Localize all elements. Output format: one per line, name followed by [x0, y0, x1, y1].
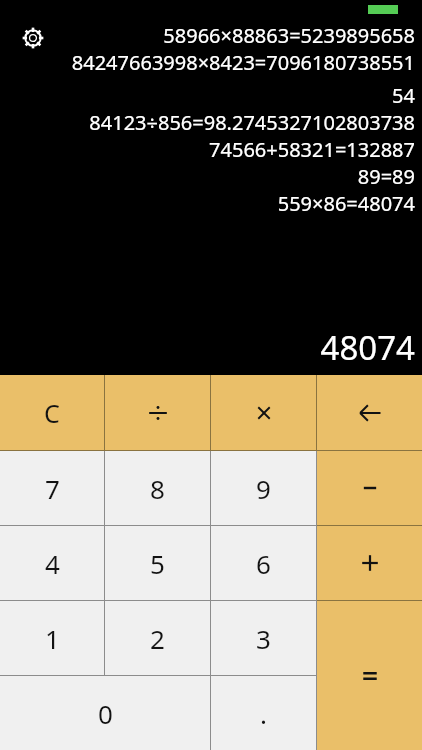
staticText: 58966×88863=5239895658	[40, 22, 415, 49]
button[interactable]: Divide	[105, 375, 210, 450]
button[interactable]: C	[0, 375, 104, 450]
staticText: .	[260, 696, 267, 731]
button[interactable]: Settings	[18, 23, 48, 53]
staticText: 0	[98, 696, 113, 731]
button[interactable]: Multiply	[211, 375, 316, 450]
button[interactable]: 8	[105, 451, 210, 525]
button[interactable]: Plus	[317, 526, 422, 600]
staticText: 4	[45, 546, 60, 581]
staticText: 6	[256, 546, 271, 581]
button[interactable]: 4	[0, 526, 104, 600]
staticText: 2	[150, 621, 165, 656]
staticText: 559×86=48074	[40, 190, 415, 217]
button[interactable]: 1	[0, 601, 104, 675]
staticText: 84123÷856=98.2745327102803738	[40, 109, 415, 136]
staticText: 8	[150, 471, 165, 506]
button[interactable]: Minus	[317, 451, 422, 525]
staticText: 84247663998×8423=7096180738551 54	[40, 49, 415, 109]
button[interactable]: 7	[0, 451, 104, 525]
button[interactable]: 6	[211, 526, 316, 600]
button[interactable]: Backspace	[317, 375, 422, 450]
staticText: 48074	[320, 325, 415, 370]
staticText: 89=89	[40, 163, 415, 190]
staticText: 7	[45, 471, 60, 506]
button[interactable]: 3	[211, 601, 316, 675]
button[interactable]: 9	[211, 451, 316, 525]
staticText: 1	[45, 621, 60, 656]
staticText: C	[44, 396, 60, 430]
button[interactable]: 2	[105, 601, 210, 675]
staticText: 9	[256, 471, 271, 506]
button[interactable]: 0	[0, 676, 210, 750]
staticText: 5	[150, 546, 165, 581]
staticText: 3	[256, 621, 271, 656]
button[interactable]: .	[211, 676, 316, 750]
staticText: 74566+58321=132887	[40, 136, 415, 163]
button[interactable]: Equals	[317, 601, 422, 750]
button[interactable]: 5	[105, 526, 210, 600]
